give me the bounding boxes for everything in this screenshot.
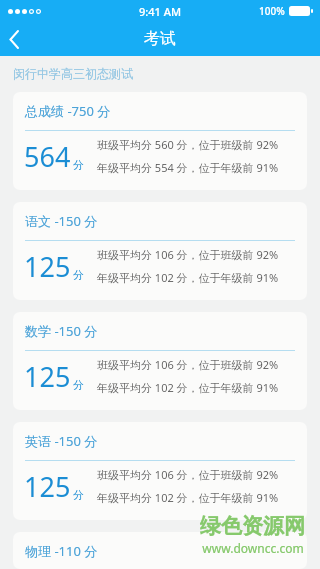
staticText: 英语 -150 分	[25, 432, 98, 450]
staticText: 分	[73, 158, 84, 172]
button[interactable]: 总成绩 -750 分	[13, 92, 307, 190]
staticText: 班级平均分 106 分，位于班级前 92%	[97, 357, 279, 372]
button[interactable]: 语文 -150 分	[13, 202, 307, 300]
button[interactable]: 数学 -150 分	[13, 312, 307, 410]
staticText: 闵行中学高三初态测试	[13, 66, 133, 81]
staticText: 考试	[144, 29, 176, 49]
staticText: 总成绩 -750 分	[25, 102, 111, 120]
button[interactable]: 英语 -150 分	[13, 422, 307, 520]
staticText: 年级平均分 102 分，位于年级前 91%	[97, 270, 279, 285]
staticText: 100%	[259, 4, 285, 18]
staticText: 分	[73, 488, 84, 502]
staticText: 125	[24, 468, 71, 505]
staticText: 班级平均分 106 分，位于班级前 92%	[97, 467, 279, 482]
staticText: 125	[24, 358, 71, 395]
staticText: 年级平均分 102 分，位于年级前 91%	[97, 380, 279, 395]
button[interactable]: 物理 -110 分	[13, 532, 307, 569]
staticText: 语文 -150 分	[25, 212, 98, 230]
staticText: 绿色资源网	[200, 513, 305, 539]
staticText: 分	[73, 268, 84, 282]
staticText: 分	[73, 378, 84, 392]
button[interactable]: Back	[0, 22, 42, 56]
staticText: 物理 -110 分	[25, 542, 98, 560]
staticText: 125	[24, 248, 71, 285]
staticText: 9:41 AM	[139, 4, 182, 19]
staticText: 年级平均分 554 分，位于年级前 91%	[97, 160, 279, 175]
staticText: 564	[24, 138, 71, 175]
staticText: 数学 -150 分	[25, 322, 98, 340]
staticText: 班级平均分 560 分，位于班级前 92%	[97, 137, 279, 152]
staticText: www.downcc.com	[202, 540, 304, 556]
staticText: 班级平均分 106 分，位于班级前 92%	[97, 247, 279, 262]
staticText: 年级平均分 102 分，位于年级前 91%	[97, 490, 279, 505]
